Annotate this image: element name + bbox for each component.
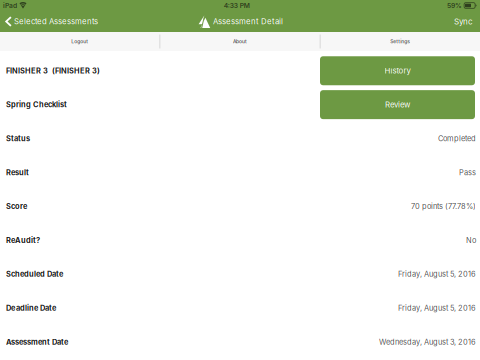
staticText: Friday, August 5, 2016	[398, 303, 476, 312]
button[interactable]: History	[320, 56, 475, 85]
staticText: Settings	[390, 38, 410, 44]
staticText: Assessment Date	[6, 337, 68, 346]
staticText: Assessment Detail	[213, 17, 283, 26]
staticText: 70 points (77.78%)	[411, 202, 476, 211]
staticText: Logout	[71, 38, 88, 44]
button[interactable]: Settings	[320, 32, 480, 51]
staticText: Spring Checklist	[6, 100, 67, 109]
staticText: 59%	[447, 1, 462, 10]
staticText: History	[384, 66, 410, 75]
staticText: Wednesday, August 3, 2016	[379, 337, 476, 346]
button[interactable]: Review	[320, 90, 475, 119]
staticText: Scheduled Date	[6, 270, 63, 279]
staticText: Selected Assessments	[14, 17, 98, 26]
staticText: Review	[385, 100, 410, 109]
button[interactable]: Logout	[0, 32, 159, 51]
staticText: Status	[6, 134, 30, 143]
staticText: ReAudit?	[6, 236, 40, 245]
staticText: Completed	[438, 134, 476, 143]
staticText: FINISHER 3 (FINISHER 3)	[6, 66, 100, 75]
staticText: 4:33 PM	[224, 1, 250, 10]
button[interactable]: Sync	[446, 11, 480, 32]
button[interactable]: About	[160, 32, 320, 51]
staticText: Deadline Date	[6, 303, 56, 312]
staticText: About	[233, 38, 247, 44]
staticText: Pass	[459, 168, 476, 177]
staticText: iPad	[3, 1, 17, 10]
staticText: Score	[6, 202, 27, 211]
staticText: Result	[6, 168, 29, 177]
button[interactable]: Selected Assessments	[0, 11, 104, 32]
staticText: No	[466, 236, 476, 245]
staticText: Friday, August 5, 2016	[398, 270, 476, 279]
staticText: Sync	[454, 17, 473, 26]
